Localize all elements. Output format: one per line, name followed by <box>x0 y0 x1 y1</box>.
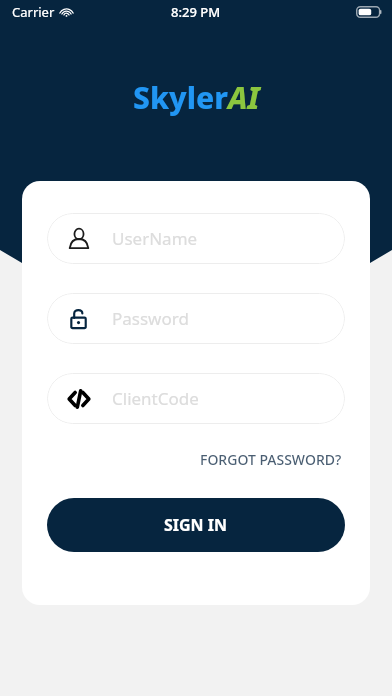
staticText: Carrier <box>12 3 55 21</box>
staticText: ClientCode <box>112 387 199 410</box>
button[interactable]: Client code <box>47 373 345 424</box>
button[interactable]: SIGN IN <box>47 498 345 552</box>
staticText: AI <box>228 77 260 118</box>
staticText: SIGN IN <box>164 514 228 536</box>
staticText: Skyler <box>133 77 228 118</box>
button[interactable]: Password <box>47 293 345 344</box>
staticText: FORGOT PASSWORD? <box>200 450 342 469</box>
staticText: UserName <box>112 227 198 250</box>
button[interactable]: User name <box>47 213 345 264</box>
button[interactable]: FORGOT PASSWORD? <box>197 445 345 474</box>
staticText: 8:29 PM <box>171 3 221 21</box>
staticText: Password <box>112 307 189 330</box>
